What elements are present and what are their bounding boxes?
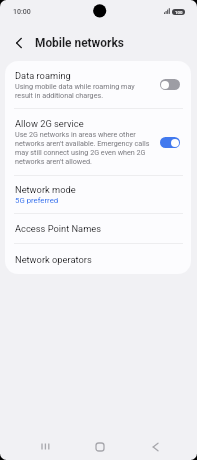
staticText: Using mobile data while roaming may resu… <box>15 82 135 100</box>
button[interactable]: Access Point Names <box>5 214 191 243</box>
staticText: Data roaming <box>15 70 71 81</box>
staticText: 100 <box>175 10 183 15</box>
button[interactable]: Network mode <box>5 176 191 213</box>
button[interactable]: Back <box>140 432 170 460</box>
button[interactable]: On <box>160 137 180 148</box>
staticText: Allow 2G service <box>15 118 84 129</box>
button[interactable]: Data roaming <box>5 61 191 108</box>
staticText: 5G preferred <box>15 196 59 205</box>
button[interactable]: Off <box>160 79 180 90</box>
button[interactable]: Recent apps <box>30 431 60 460</box>
staticText: Network mode <box>15 184 76 195</box>
button[interactable]: Home <box>85 432 115 460</box>
button[interactable]: Navigate up <box>8 33 28 53</box>
staticText: Mobile networks <box>35 36 124 50</box>
staticText: Network operators <box>15 254 92 265</box>
button[interactable]: Network operators <box>5 244 191 274</box>
button[interactable]: Allow 2G service <box>5 109 191 175</box>
staticText: Access Point Names <box>15 223 102 234</box>
staticText: 10:00 <box>13 8 31 16</box>
staticText: Use 2G networks in areas where other net… <box>15 130 150 166</box>
